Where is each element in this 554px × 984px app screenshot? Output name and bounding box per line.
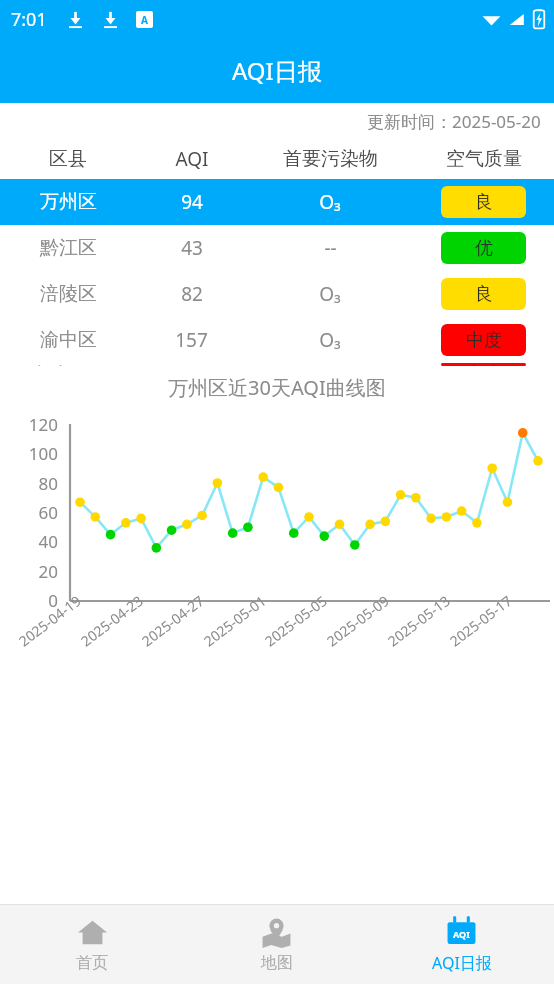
staticText: 0 xyxy=(0,589,58,612)
button[interactable]: 渝中区 xyxy=(0,317,554,363)
staticText: O₃ xyxy=(319,189,341,215)
staticText: 20 xyxy=(0,560,58,583)
staticText: O₃ xyxy=(319,281,341,307)
button[interactable]: 地图 xyxy=(184,905,369,984)
button[interactable]: 首页 xyxy=(0,905,184,984)
staticText: 黔江区 xyxy=(40,236,97,260)
staticText: 40 xyxy=(0,530,58,553)
staticText: 7:01 xyxy=(11,7,47,32)
staticText: 首页 xyxy=(76,953,108,973)
other: 地图 xyxy=(261,917,292,948)
staticText: AQI日报 xyxy=(232,54,322,87)
staticText: 涪陵区 xyxy=(40,282,97,306)
staticText: 万州区 xyxy=(40,190,97,214)
other: 首页 xyxy=(77,917,108,948)
other: AQI日报 xyxy=(446,916,477,947)
staticText: 中度 xyxy=(466,329,502,352)
staticText: A xyxy=(141,13,148,27)
staticText: 空气质量 xyxy=(446,147,522,171)
staticText: 2025-04-19 xyxy=(15,591,85,650)
staticText: AQI xyxy=(453,928,470,940)
staticText: 94 xyxy=(181,189,203,215)
staticText: 更新时间：2025-05-20 xyxy=(367,110,541,133)
staticText: 万州区近30天AQI曲线图 xyxy=(168,374,386,401)
staticText: 82 xyxy=(181,281,203,307)
staticText: 2025-05-17 xyxy=(446,591,516,650)
staticText: 2025-05-01 xyxy=(200,591,270,650)
staticText: 优 xyxy=(475,237,493,260)
staticText: 2025-05-09 xyxy=(323,591,393,650)
staticText: 区县 xyxy=(49,147,87,171)
staticText: 2025-05-13 xyxy=(384,591,454,650)
staticText: 大渡口区 xyxy=(30,363,106,366)
staticText: 良 xyxy=(475,283,493,306)
staticText: 120 xyxy=(0,413,58,436)
staticText: 地图 xyxy=(261,953,293,973)
staticText: 良 xyxy=(475,191,493,214)
staticText: 中度 xyxy=(466,363,502,366)
button[interactable]: 万州区 xyxy=(0,179,554,225)
staticText: O₃ xyxy=(319,327,341,353)
staticText: AQI日报 xyxy=(432,952,492,974)
staticText: 100 xyxy=(0,442,58,465)
staticText: 157 xyxy=(175,327,208,353)
button[interactable]: 涪陵区 xyxy=(0,271,554,317)
staticText: -- xyxy=(324,235,337,261)
button[interactable]: AQI日报 xyxy=(369,905,554,984)
staticText: 2025-05-05 xyxy=(261,591,331,650)
button[interactable]: 黔江区 xyxy=(0,225,554,271)
staticText: 80 xyxy=(0,472,58,495)
staticText: 60 xyxy=(0,501,58,524)
staticText: 2025-04-23 xyxy=(77,591,147,650)
staticText: AQI xyxy=(175,146,209,172)
staticText: 渝中区 xyxy=(40,328,97,352)
button[interactable]: 大渡口区 xyxy=(0,363,554,366)
staticText: 首要污染物 xyxy=(283,147,378,171)
staticText: 43 xyxy=(181,235,203,261)
staticText: 2025-04-27 xyxy=(138,591,208,650)
